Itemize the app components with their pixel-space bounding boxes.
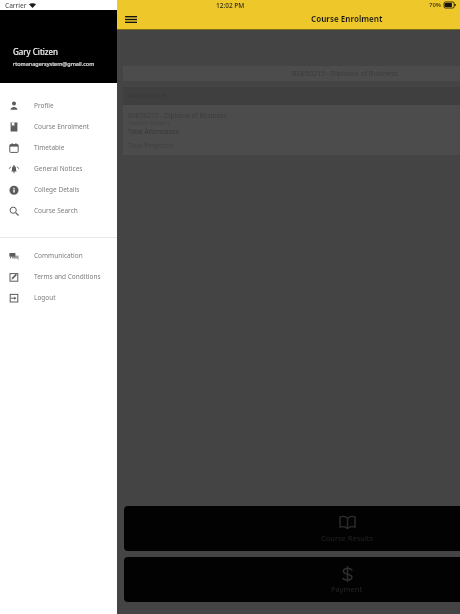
button[interactable]: General Notices <box>0 158 117 179</box>
staticText: Total Projected <box>128 141 174 150</box>
staticText: 12:02 PM <box>216 1 245 10</box>
button[interactable]: Course Results <box>124 506 460 551</box>
staticText: Gary Citizen <box>13 46 59 57</box>
button[interactable]: Open navigation menu <box>120 9 142 29</box>
button[interactable]: Communication <box>0 245 117 266</box>
staticText: 70% <box>429 1 442 9</box>
button[interactable]: Profile <box>0 95 117 116</box>
staticText: Course Results <box>321 533 374 543</box>
staticText: Course Enrolment <box>311 13 383 24</box>
staticText: Course Search <box>34 206 78 215</box>
staticText: Payment <box>331 584 363 594</box>
button[interactable]: Payment <box>124 557 460 602</box>
staticText: Carrier <box>5 1 27 10</box>
button[interactable]: Terms and Conditions <box>0 266 117 287</box>
staticText: Terms and Conditions <box>34 272 101 281</box>
staticText: BSB50215 - Diploma of Business <box>292 69 398 79</box>
button[interactable]: Course Search <box>0 200 117 221</box>
staticText: General Notices <box>34 164 83 173</box>
staticText: Timetable <box>34 143 65 152</box>
staticText: Communication <box>34 251 83 260</box>
staticText: rtomanagersystem@gmail.com <box>13 60 95 67</box>
button[interactable]: Logout <box>0 287 117 308</box>
staticText: Course Enrolment <box>34 122 90 131</box>
staticText: Logout <box>34 293 56 302</box>
button[interactable]: Course Enrolment <box>0 116 117 137</box>
staticText: Total Attendance <box>128 127 180 136</box>
staticText: Profile <box>34 101 54 110</box>
staticText: College Details <box>34 185 80 194</box>
button[interactable]: College Details <box>0 179 117 200</box>
button[interactable]: Timetable <box>0 137 117 158</box>
staticText: BSB50215 - Diploma of Business <box>128 111 227 120</box>
